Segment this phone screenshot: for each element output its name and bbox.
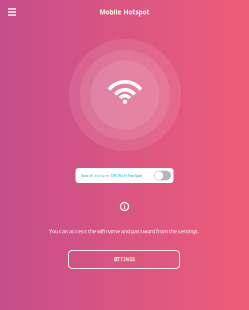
staticText: Switch to turn ON Wi-Fi HotSpot: [80, 173, 142, 178]
button[interactable]: Switch to turn ON Wi-Fi HotSpot: [75, 168, 173, 183]
staticText: You can access the wifi name and passwor…: [49, 227, 200, 235]
button[interactable]: SETTINGS: [68, 250, 179, 268]
button[interactable]: Menu: [2, 2, 22, 22]
staticText: Mobile Hotspot: [99, 8, 149, 16]
staticText: SETTINGS: [113, 256, 134, 262]
